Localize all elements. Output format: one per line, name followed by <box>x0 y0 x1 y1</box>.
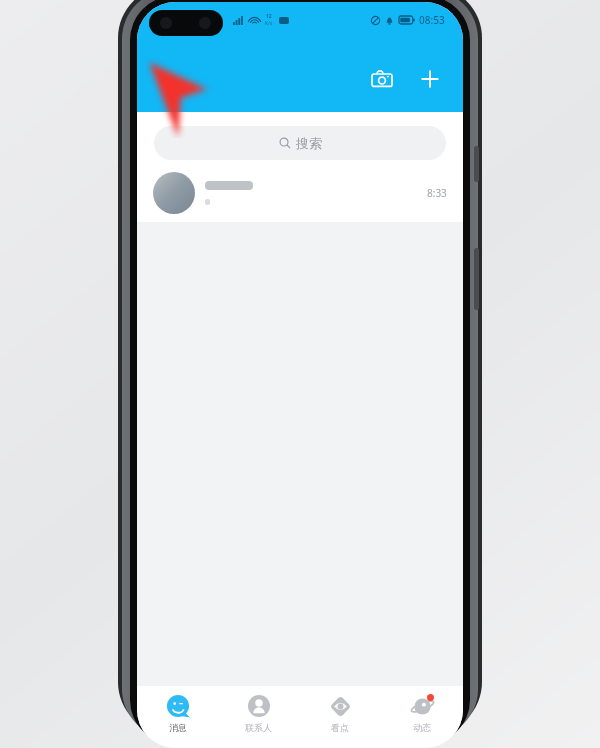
button[interactable]: 8:33 <box>137 164 463 222</box>
staticText: 消息 <box>169 722 187 733</box>
button[interactable]: 动态 <box>381 686 463 740</box>
button[interactable]: Camera <box>365 62 399 96</box>
button[interactable]: 搜索 <box>154 126 446 160</box>
button[interactable]: 看点 <box>299 686 381 740</box>
staticText: 8:33 <box>427 186 447 200</box>
staticText: 动态 <box>413 722 431 733</box>
staticText: 看点 <box>331 722 349 733</box>
button[interactable]: 消息 <box>137 686 218 740</box>
staticText: K/s <box>265 20 273 27</box>
button[interactable]: Add <box>413 62 447 96</box>
button[interactable]: 联系人 <box>218 686 299 740</box>
staticText: 12 <box>266 13 272 20</box>
staticText: 联系人 <box>245 722 272 733</box>
staticText: 08:53 <box>419 13 445 27</box>
staticText: 搜索 <box>296 135 322 151</box>
